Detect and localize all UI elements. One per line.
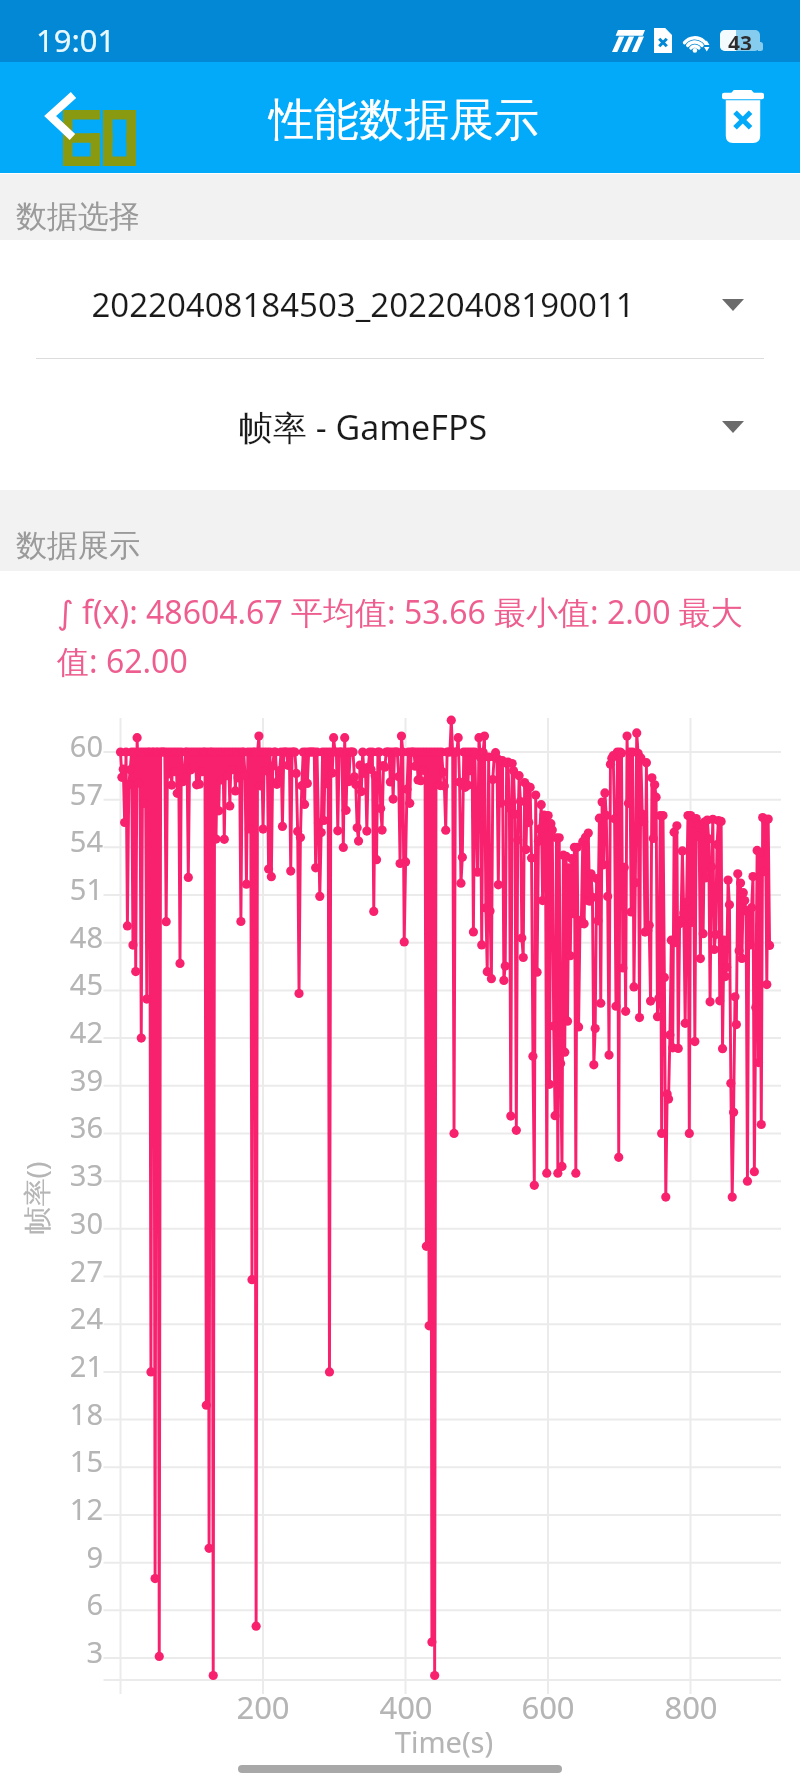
staticText: 帧率() — [16, 1161, 54, 1234]
staticText: 800 — [641, 1686, 741, 1728]
staticText: 60 — [42, 726, 103, 765]
staticText: 48 — [42, 917, 103, 956]
staticText: 6 — [42, 1584, 103, 1623]
staticText: 数据展示 — [16, 526, 140, 565]
staticText: 24 — [42, 1298, 103, 1337]
staticText: 42 — [42, 1012, 103, 1051]
staticText: 600 — [498, 1686, 598, 1728]
button[interactable]: Back — [0, 62, 112, 173]
staticText: 18 — [42, 1394, 103, 1433]
staticText: 400 — [356, 1686, 456, 1728]
button[interactable]: 帧率 - GameFPS — [0, 363, 800, 490]
staticText: 帧率 - GameFPS — [20, 404, 706, 450]
button[interactable]: Delete — [688, 62, 800, 173]
staticText: 性能数据展示 — [269, 92, 539, 149]
staticText: 43 — [720, 30, 760, 50]
staticText: 9 — [42, 1537, 103, 1576]
staticText: 30 — [42, 1203, 103, 1242]
staticText: Time(s) — [339, 1722, 549, 1761]
staticText: 39 — [42, 1060, 103, 1099]
staticText: 57 — [42, 774, 103, 813]
staticText: 54 — [42, 821, 103, 860]
button[interactable]: 20220408184503_20220408190011 — [0, 241, 800, 368]
staticText: 15 — [42, 1441, 103, 1480]
staticText: 20220408184503_20220408190011 — [20, 282, 706, 327]
staticText: 12 — [42, 1489, 103, 1528]
staticText: 36 — [42, 1107, 103, 1146]
staticText: 数据选择 — [16, 197, 140, 236]
staticText: 200 — [213, 1686, 313, 1728]
staticText: ∫ f(x): 48604.67 平均值: 53.66 最小值: 2.00 最大… — [57, 590, 762, 682]
staticText: 21 — [42, 1346, 103, 1385]
staticText: 33 — [42, 1155, 103, 1194]
staticText: 19:01 — [36, 19, 116, 61]
staticText: 27 — [42, 1251, 103, 1290]
staticText: 51 — [42, 869, 103, 908]
staticText: 3 — [42, 1632, 103, 1671]
staticText: 45 — [42, 964, 103, 1003]
